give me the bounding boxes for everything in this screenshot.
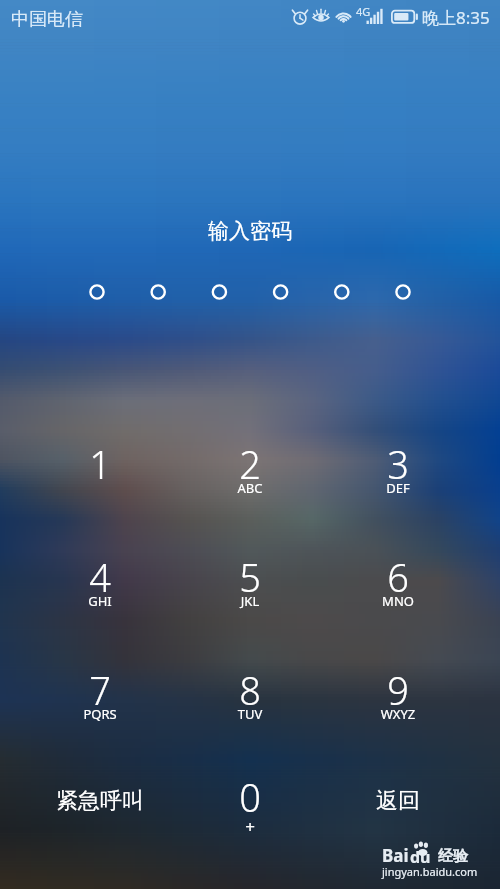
staticText: 返回 [324,787,472,815]
staticText: JKL [176,592,324,610]
staticText: 3 [324,438,472,490]
staticText: 0 [176,771,324,823]
staticText: 4 [26,551,174,603]
staticText: ABC [176,479,324,497]
staticText: DEF [324,479,472,497]
staticText: 8 [176,664,324,716]
staticText: + [176,815,324,838]
button[interactable]: 7 [26,637,174,745]
staticText: WXYZ [324,705,472,723]
staticText: MNO [324,592,472,610]
button[interactable]: 2 [176,411,324,519]
staticText: 9 [324,664,472,716]
button[interactable]: 3 [324,411,472,519]
staticText: 6 [324,551,472,603]
staticText: GHI [26,592,174,610]
staticText: 2 [176,438,324,490]
button[interactable]: 8 [176,637,324,745]
staticText: du [410,846,431,868]
button[interactable]: 9 [324,637,472,745]
staticText: jingyan.baidu.com [382,864,478,879]
button[interactable]: 4 [26,524,174,632]
staticText: 经验 [438,847,468,866]
staticText: 输入密码 [0,218,500,244]
button[interactable]: 0 [176,744,324,852]
button[interactable]: 返回 [324,744,472,852]
staticText: PQRS [26,705,174,723]
button[interactable]: 1 [26,411,174,519]
staticText: TUV [176,705,324,723]
staticText: 5 [176,551,324,603]
staticText: 4G [356,4,371,19]
staticText: 晚上8:35 [422,6,490,29]
button[interactable]: 紧急呼叫 [26,744,174,852]
button[interactable]: 6 [324,524,472,632]
staticText: 紧急呼叫 [26,787,174,815]
button[interactable]: 5 [176,524,324,632]
staticText: 中国电信 [11,8,83,31]
staticText: 7 [26,664,174,716]
staticText: Bai [382,844,409,867]
staticText: 1 [26,438,174,490]
